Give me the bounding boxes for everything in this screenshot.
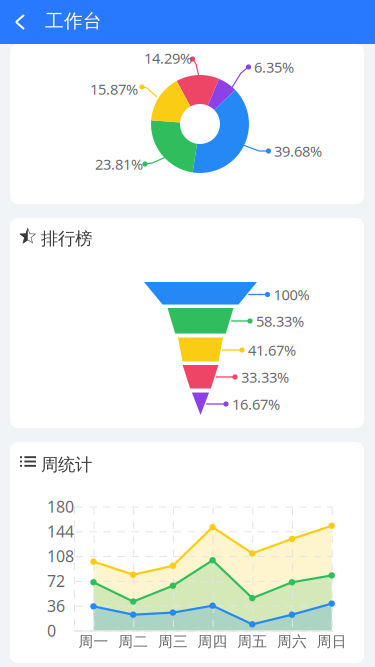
staticText: 180 bbox=[47, 496, 74, 517]
staticText: 周三 bbox=[158, 632, 188, 650]
staticText: 工作台 bbox=[45, 9, 102, 32]
staticText: 39.68% bbox=[274, 141, 322, 161]
staticText: 33.33% bbox=[241, 367, 289, 387]
staticText: 15.87% bbox=[90, 79, 138, 99]
staticText: 108 bbox=[47, 545, 74, 567]
button[interactable]: Back bbox=[0, 0, 44, 44]
staticText: 23.81% bbox=[95, 154, 143, 174]
staticText: 58.33% bbox=[256, 311, 304, 331]
staticText: 周二 bbox=[118, 632, 148, 650]
staticText: 周四 bbox=[198, 632, 228, 650]
staticText: 周一 bbox=[78, 632, 108, 650]
staticText: 排行榜 bbox=[41, 228, 92, 249]
staticText: 72 bbox=[47, 570, 65, 591]
staticText: 周五 bbox=[237, 632, 267, 650]
staticText: 144 bbox=[47, 521, 74, 542]
staticText: 周统计 bbox=[41, 454, 92, 475]
staticText: 周日 bbox=[317, 632, 347, 650]
staticText: 100% bbox=[273, 285, 309, 304]
staticText: 周六 bbox=[277, 632, 307, 650]
staticText: 36 bbox=[47, 595, 65, 616]
staticText: 41.67% bbox=[248, 340, 296, 360]
staticText: 14.29% bbox=[144, 48, 192, 68]
staticText: 6.35% bbox=[254, 57, 294, 77]
staticText: 16.67% bbox=[232, 394, 280, 414]
staticText: 0 bbox=[47, 620, 56, 641]
